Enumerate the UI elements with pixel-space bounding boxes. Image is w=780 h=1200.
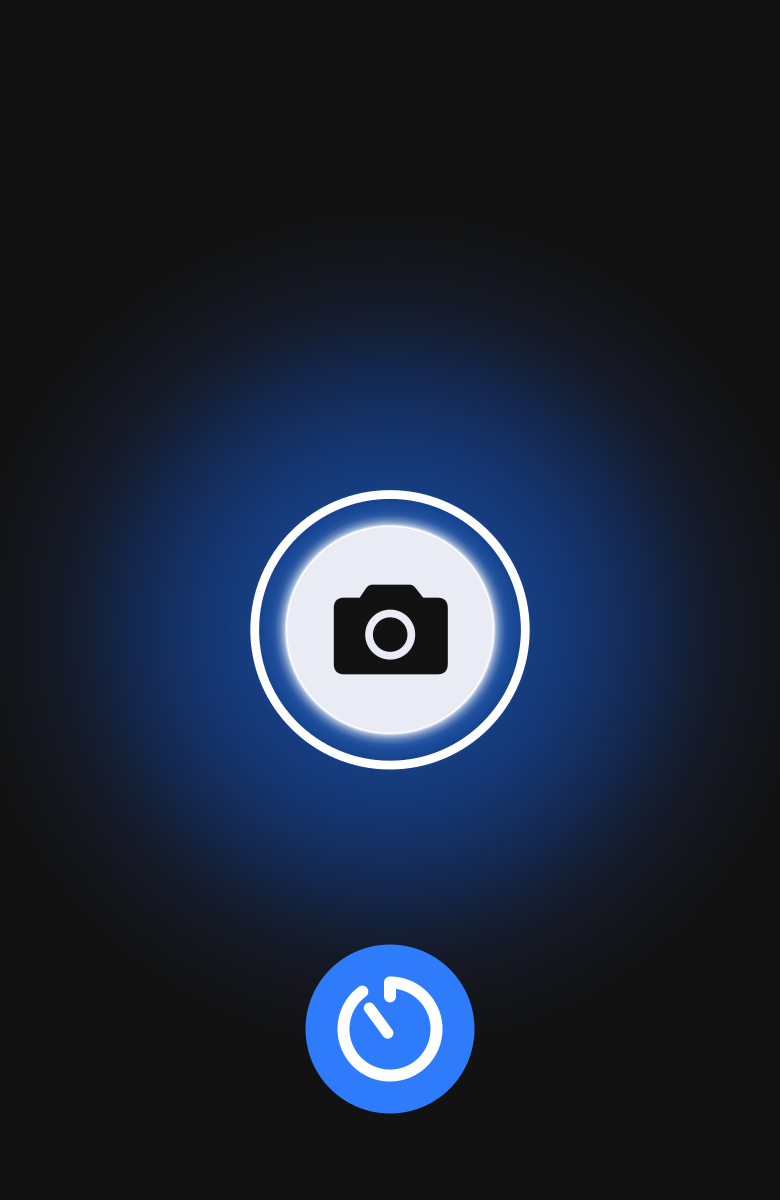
button[interactable]: Timer — [305, 944, 474, 1113]
button[interactable]: Take photo — [287, 527, 493, 732]
